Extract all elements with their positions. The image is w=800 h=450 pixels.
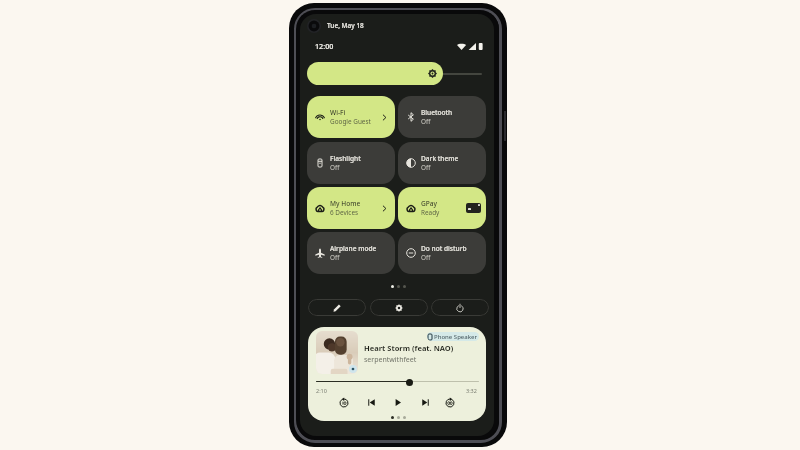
staticText: Bluetooth [421,108,453,117]
staticText: Ready [421,208,440,217]
button[interactable]: Do not disturb [398,232,486,274]
button[interactable]: Flashlight [307,142,395,184]
button[interactable]: Bluetooth [398,96,486,138]
button[interactable]: Previous [362,393,380,411]
button[interactable]: My Home [307,187,395,229]
button[interactable]: Airplane mode [307,232,395,274]
button[interactable]: Power [431,299,489,316]
button[interactable]: Rewind 10 seconds [335,393,353,411]
button[interactable]: Dark theme [398,142,486,184]
staticText: Off [421,163,431,172]
staticText: Flashlight [330,154,361,163]
button[interactable] [307,62,443,85]
staticText: GPay [421,199,438,208]
staticText: Do not disturb [421,244,467,253]
staticText: Off [330,253,340,262]
staticText: Tue, May 18 [327,21,364,30]
staticText: 2:10 [316,387,327,394]
staticText: Airplane mode [330,244,377,253]
button[interactable]: Forward 30 seconds [441,393,459,411]
staticText: Google Guest [330,117,371,126]
staticText: Off [330,163,340,172]
staticText: serpentwithfeet [364,355,417,365]
button[interactable]: Play [389,393,407,411]
staticText: Dark theme [421,154,459,163]
staticText: 3:32 [466,387,477,394]
staticText: 6 Devices [330,208,359,217]
button[interactable]: Next [416,393,434,411]
staticText: Off [421,253,431,262]
button[interactable]: GPay [398,187,486,229]
button[interactable]: Phone Speaker [427,332,479,341]
staticText: Phone Speaker [434,333,478,341]
staticText: My Home [330,199,361,208]
staticText: Heart Storm (feat. NAO) [364,343,454,353]
staticText: Wi-Fi [330,108,346,117]
button[interactable]: Edit [308,299,366,316]
button[interactable]: Settings [370,299,428,316]
button[interactable]: Wi-Fi [307,96,395,138]
staticText: 12:00 [315,41,334,51]
staticText: Off [421,117,431,126]
